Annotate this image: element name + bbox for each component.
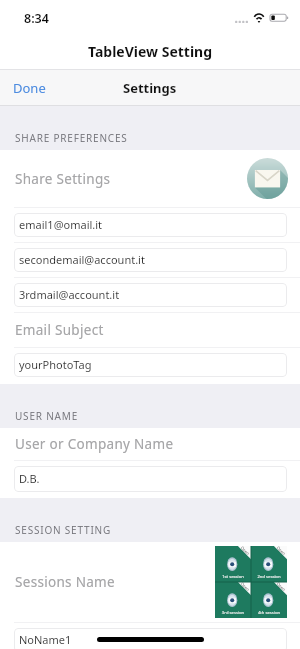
button[interactable]: 3rdmail@account.it (14, 283, 287, 307)
staticText: TableView Setting (88, 42, 213, 61)
button[interactable]: yourPhotoTag (14, 353, 287, 377)
staticText: Open (240, 581, 251, 592)
staticText: 8:34 (24, 10, 49, 27)
staticText: email1@omail.it (19, 217, 103, 232)
staticText: secondemail@account.it (19, 252, 145, 267)
button[interactable]: email1@omail.it (14, 213, 287, 237)
staticText: SHARE PREFERENCES (15, 131, 128, 145)
button[interactable]: NoName1 (14, 628, 287, 649)
staticText: 3rdmail@account.it (19, 287, 120, 302)
staticText: D.B. (19, 471, 40, 486)
staticText: SESSION SETTING (15, 523, 112, 537)
staticText: NoName1 (19, 632, 72, 647)
button[interactable]: secondemail@account.it (14, 248, 287, 272)
staticText: 2nd session (251, 574, 287, 580)
staticText: Open (276, 546, 287, 556)
button[interactable]: Done (0, 71, 58, 105)
staticText: 1st session (215, 574, 251, 580)
staticText: Done (13, 79, 46, 97)
staticText: Share Settings (15, 170, 111, 188)
staticText: Email Subject (15, 321, 104, 339)
button[interactable]: D.B. (14, 466, 287, 492)
staticText: 3rd session (215, 610, 251, 616)
staticText: 4th session (251, 610, 287, 616)
button[interactable]: Sessions (215, 546, 287, 618)
staticText: yourPhotoTag (19, 357, 92, 372)
staticText: Sessions Name (15, 573, 115, 591)
staticText: Open (240, 546, 251, 556)
staticText: Open (276, 581, 287, 592)
button[interactable]: Share by email (247, 158, 288, 199)
staticText: USER NAME (15, 409, 78, 423)
staticText: User or Company Name (15, 435, 174, 453)
staticText: Settings (123, 79, 177, 97)
